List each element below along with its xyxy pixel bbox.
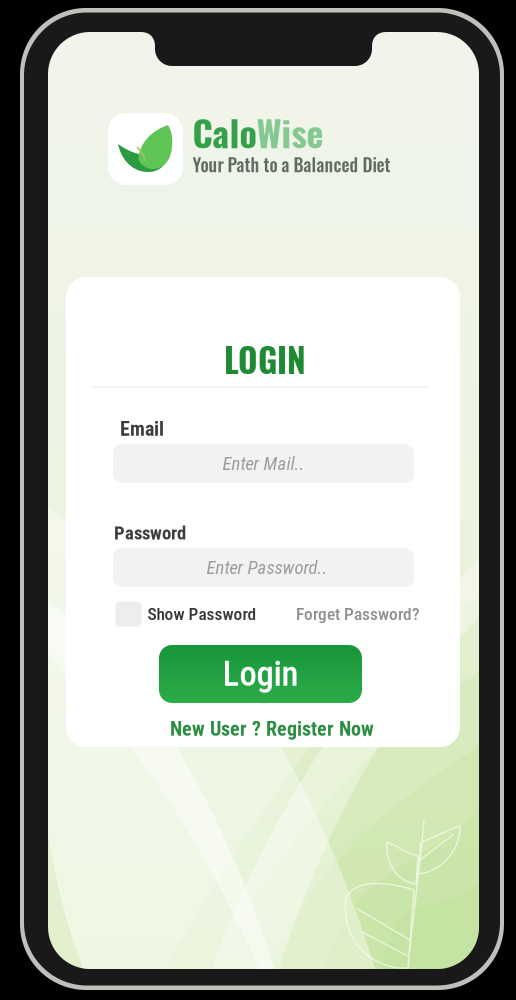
staticText: Enter Mail.. [222,453,304,474]
staticText: Wise [256,105,323,159]
staticText: Password [114,522,186,544]
staticText: Your Path to a Balanced Diet [192,151,390,177]
staticText: Show Password [147,604,256,624]
button[interactable]: Login [159,645,362,703]
staticText: Forget Password? [296,604,420,624]
staticText: LOGIN [224,334,306,384]
staticText: Calo [192,105,256,159]
staticText: Login [222,654,298,694]
staticText: Email [120,417,164,441]
button[interactable]: New User ? Register Now [170,717,374,741]
button[interactable]: Forget Password? [296,604,420,624]
staticText: Enter Password.. [206,557,327,578]
button[interactable]: Show Password [115,601,256,626]
staticText: New User ? Register Now [170,717,374,741]
